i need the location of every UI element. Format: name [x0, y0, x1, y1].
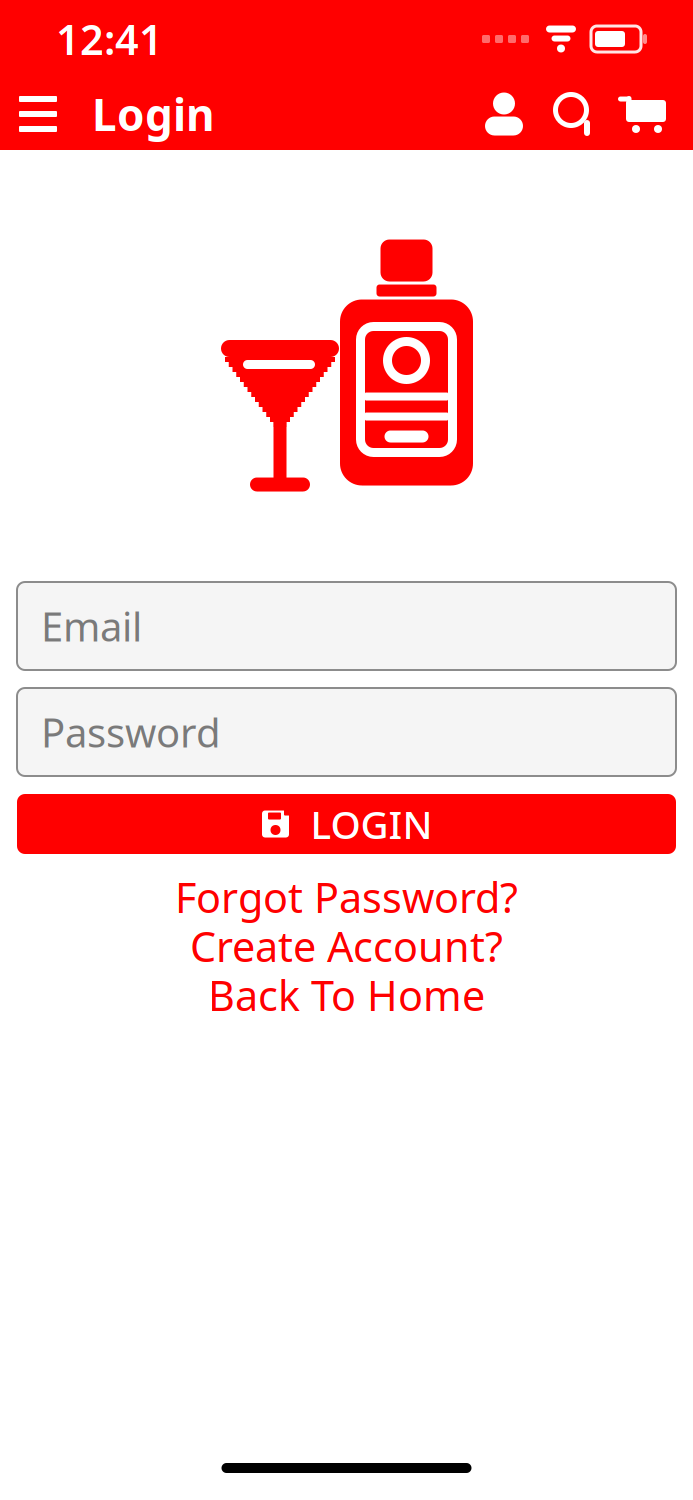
staticText: 12:41 [56, 12, 163, 66]
staticText: Email [41, 599, 142, 652]
staticText: Login [92, 85, 215, 143]
button[interactable]: Account [469, 78, 539, 150]
staticText: Password [41, 705, 221, 758]
button[interactable]: Create Account? [17, 929, 676, 963]
button[interactable]: Back To Home [17, 978, 676, 1012]
button[interactable]: Cart [609, 78, 679, 150]
button[interactable]: Password [17, 688, 676, 776]
button[interactable]: Forgot Password? [17, 880, 676, 914]
staticText: LOGIN [310, 798, 432, 850]
staticText: Create Account? [190, 919, 503, 973]
staticText: Forgot Password? [175, 870, 518, 924]
button[interactable]: Email [17, 582, 676, 670]
button[interactable]: LOGIN [17, 794, 676, 854]
button[interactable]: Search [539, 78, 609, 150]
button[interactable]: Menu [6, 78, 70, 150]
staticText: Back To Home [208, 968, 485, 1022]
